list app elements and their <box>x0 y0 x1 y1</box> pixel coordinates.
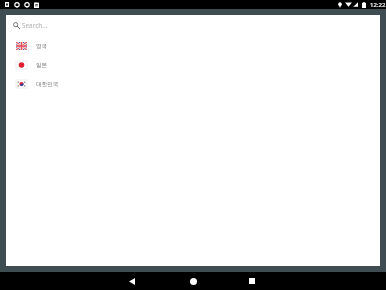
button[interactable]: Search... <box>6 15 380 36</box>
button[interactable]: 일본 <box>6 55 380 74</box>
staticText: 일본 <box>36 62 48 69</box>
staticText: 대한민국 <box>36 81 59 88</box>
button[interactable]: 대한민국 <box>6 74 380 93</box>
staticText: Search... <box>22 21 48 30</box>
button[interactable]: Home <box>178 272 208 290</box>
button[interactable]: Recents <box>237 272 267 290</box>
staticText: 12:22 <box>370 1 386 9</box>
staticText: 영국 <box>36 43 48 50</box>
button[interactable]: 영국 <box>6 36 380 55</box>
button[interactable]: Back <box>117 272 147 290</box>
